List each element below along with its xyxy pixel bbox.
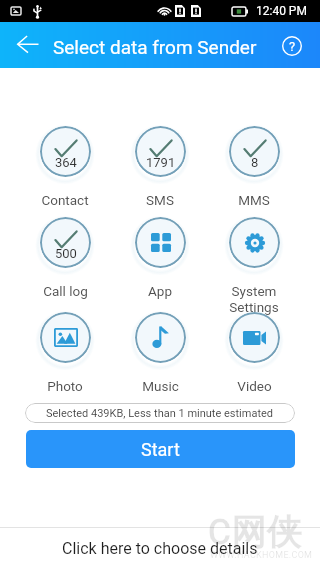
staticText: 500 xyxy=(55,246,77,261)
staticText: Call log xyxy=(43,283,88,299)
staticText: System Settings xyxy=(229,283,279,315)
staticText: Start xyxy=(141,439,180,460)
staticText: Photo xyxy=(47,378,83,394)
button[interactable]: Photo xyxy=(17,306,113,400)
staticText: SMS xyxy=(146,192,174,208)
staticText: Click here to choose details xyxy=(62,539,258,558)
staticText: Select data from Sender xyxy=(53,36,257,58)
button[interactable]: Help xyxy=(276,23,308,69)
button[interactable]: 1791 xyxy=(112,120,208,214)
staticText: 12:40 PM xyxy=(256,4,307,18)
button[interactable]: Music xyxy=(112,306,208,400)
staticText: 8 xyxy=(251,155,259,170)
button[interactable]: Click here to choose details xyxy=(0,528,320,569)
button[interactable]: Back xyxy=(6,24,50,66)
staticText: Contact xyxy=(41,192,89,208)
button[interactable]: App xyxy=(112,211,208,305)
button[interactable]: System Settings xyxy=(206,211,302,305)
button[interactable]: Video xyxy=(206,306,302,400)
staticText: 364 xyxy=(55,155,77,170)
staticText: Music xyxy=(142,378,179,394)
button[interactable]: 500 xyxy=(17,211,113,305)
staticText: 1791 xyxy=(146,155,176,170)
staticText: Video xyxy=(237,378,272,394)
button[interactable]: Start xyxy=(26,430,295,468)
staticText: App xyxy=(148,283,172,299)
staticText: C网侠 xyxy=(208,510,303,554)
staticText: ? xyxy=(289,39,296,54)
button[interactable]: 8 xyxy=(206,120,302,214)
button[interactable]: 364 xyxy=(17,120,113,214)
button[interactable]: Selected 439KB, Less than 1 minute estim… xyxy=(25,403,295,423)
staticText: WWW.HACKHOME.COM xyxy=(210,550,313,561)
staticText: Selected 439KB, Less than 1 minute estim… xyxy=(46,407,274,420)
staticText: MMS xyxy=(238,192,270,208)
